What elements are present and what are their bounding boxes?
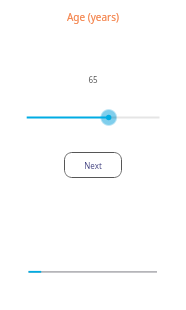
staticText: Next (84, 160, 102, 171)
staticText: 65 (0, 74, 186, 85)
staticText: Age (years) (0, 10, 186, 24)
other: Survey progress (28, 268, 158, 276)
button[interactable]: Next (64, 152, 122, 178)
button[interactable]: Age slider, 65 years (18, 105, 168, 130)
